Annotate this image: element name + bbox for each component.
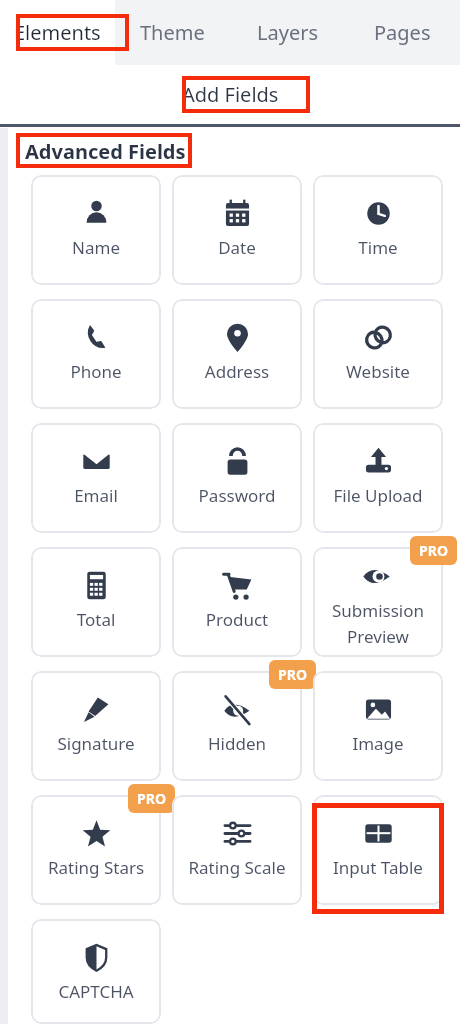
staticText: PRO (419, 541, 448, 560)
staticText: Rating Stars (31, 856, 161, 879)
button[interactable]: Input Table (313, 795, 443, 905)
staticText: Add Fields (182, 81, 279, 108)
staticText: Hidden (172, 732, 302, 755)
staticText: Layers (257, 19, 319, 46)
button[interactable]: Submission Preview (313, 547, 443, 657)
button[interactable]: Signature (31, 671, 161, 781)
button[interactable]: Date (172, 175, 302, 285)
button[interactable]: Name (31, 175, 161, 285)
staticText: Input Table (313, 856, 443, 879)
staticText: PRO (137, 789, 166, 808)
button[interactable]: Elements (0, 0, 115, 65)
staticText: Phone (31, 360, 161, 383)
button[interactable]: Pages (345, 0, 460, 65)
staticText: CAPTCHA (31, 980, 161, 1003)
button[interactable]: Layers (230, 0, 345, 65)
staticText: Pages (374, 19, 431, 46)
staticText: File Upload (313, 484, 443, 507)
button[interactable]: Rating Stars (31, 795, 161, 905)
staticText: Image (313, 732, 443, 755)
staticText: Email (31, 484, 161, 507)
button[interactable]: Website (313, 299, 443, 409)
staticText: Theme (140, 19, 205, 46)
button[interactable]: Password (172, 423, 302, 533)
staticText: PRO (278, 665, 307, 684)
button[interactable]: Product (172, 547, 302, 657)
button[interactable]: Address (172, 299, 302, 409)
staticText: Address (172, 360, 302, 383)
button[interactable]: Time (313, 175, 443, 285)
button[interactable]: CAPTCHA (31, 919, 161, 1024)
button[interactable]: File Upload (313, 423, 443, 533)
button[interactable]: Total (31, 547, 161, 657)
staticText: Total (31, 608, 161, 631)
staticText: Password (172, 484, 302, 507)
button[interactable]: Theme (115, 0, 230, 65)
button[interactable]: Rating Scale (172, 795, 302, 905)
button[interactable]: Hidden (172, 671, 302, 781)
staticText: Signature (31, 732, 161, 755)
button[interactable]: Image (313, 671, 443, 781)
button[interactable]: Add Fields (0, 65, 460, 124)
staticText: Product (172, 608, 302, 631)
staticText: Elements (14, 19, 101, 46)
staticText: Name (31, 236, 161, 259)
staticText: Submission Preview (313, 599, 443, 648)
button[interactable]: Email (31, 423, 161, 533)
staticText: Rating Scale (172, 856, 302, 879)
staticText: Date (172, 236, 302, 259)
staticText: Time (313, 236, 443, 259)
staticText: Website (313, 360, 443, 383)
staticText: Advanced Fields (25, 138, 186, 165)
button[interactable]: Phone (31, 299, 161, 409)
